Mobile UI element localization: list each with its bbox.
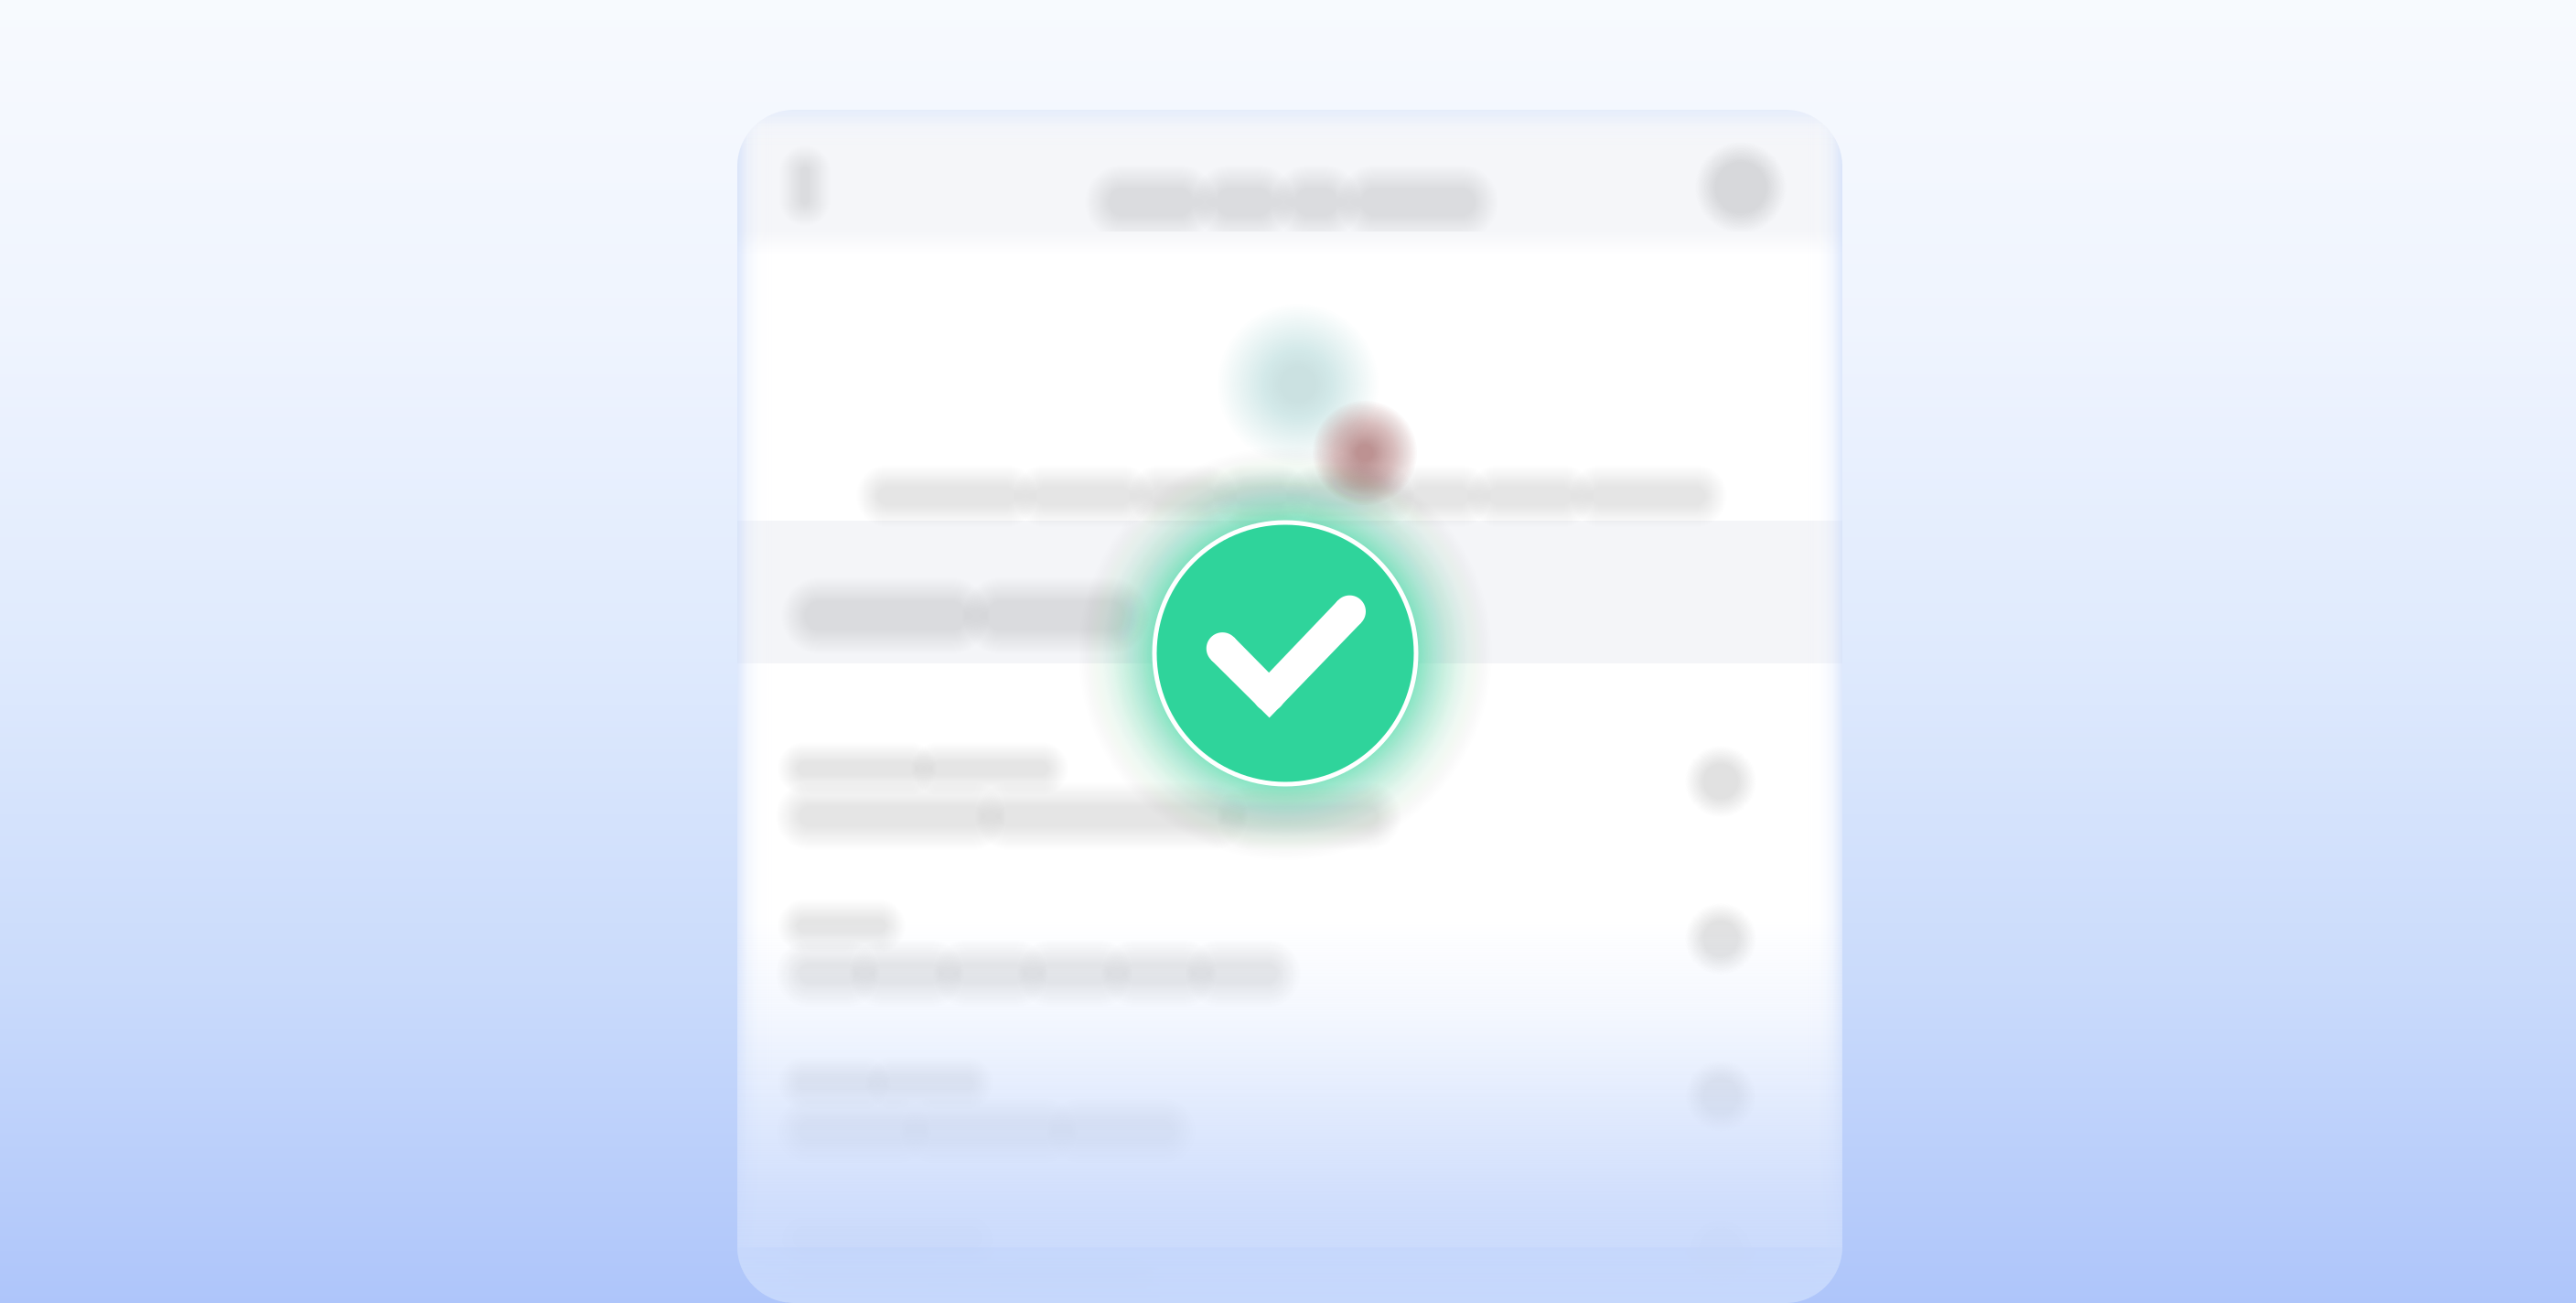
button[interactable]: Back bbox=[757, 138, 853, 233]
button[interactable] bbox=[737, 887, 1842, 1044]
button[interactable]: Information bbox=[1690, 137, 1791, 238]
button[interactable] bbox=[737, 729, 1842, 887]
button[interactable] bbox=[737, 1044, 1842, 1201]
button[interactable] bbox=[737, 1201, 1842, 1303]
